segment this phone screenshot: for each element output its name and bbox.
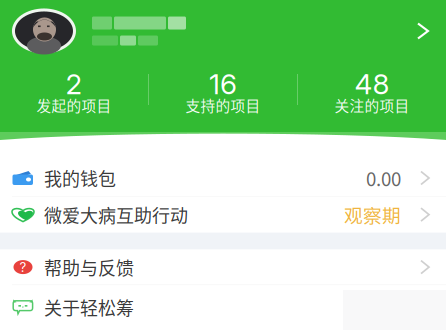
button[interactable]: 我的钱包 [0, 160, 446, 196]
staticText: 微爱大病互助行动 [44, 202, 188, 228]
staticText: 0.00 [366, 164, 401, 191]
button[interactable]: 关于轻松筹 [0, 285, 446, 329]
staticText: 2 [65, 67, 82, 101]
staticText: 发起的项目 [36, 94, 111, 116]
staticText: 观察期 [344, 201, 401, 228]
staticText: ? [19, 259, 26, 275]
staticText: 关于轻松筹 [44, 294, 134, 320]
button[interactable]: 2 [0, 62, 148, 117]
staticText: 支持的项目 [185, 94, 260, 116]
button[interactable]: ? [0, 250, 446, 285]
button[interactable]: 微爱大病互助行动 [0, 197, 446, 233]
button[interactable]: 48 [298, 62, 446, 117]
staticText: 我的钱包 [44, 165, 116, 191]
staticText: 16 [209, 67, 237, 101]
staticText: 关注的项目 [334, 94, 409, 116]
button[interactable] [0, 0, 446, 62]
staticText: 帮助与反馈 [44, 254, 134, 280]
staticText: 48 [354, 67, 389, 101]
button[interactable]: 16 [149, 62, 297, 117]
